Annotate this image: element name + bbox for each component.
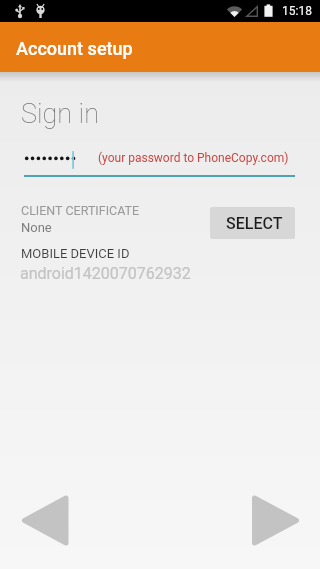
button[interactable]: Next	[243, 486, 309, 554]
staticText: (your password to PhoneCopy.com)	[98, 151, 289, 165]
staticText: MOBILE DEVICE ID	[21, 246, 130, 261]
staticText: None	[21, 220, 52, 235]
staticText: android1420070762932	[20, 264, 191, 283]
staticText: SELECT	[226, 214, 283, 233]
staticText: CLIENT CERTIFICATE	[21, 203, 140, 218]
button[interactable]: Previous	[12, 486, 78, 554]
button[interactable]: SELECT	[210, 207, 295, 239]
staticText: 15:18	[282, 4, 312, 18]
staticText: Account setup	[16, 38, 133, 59]
staticText: Sign in	[21, 98, 99, 130]
